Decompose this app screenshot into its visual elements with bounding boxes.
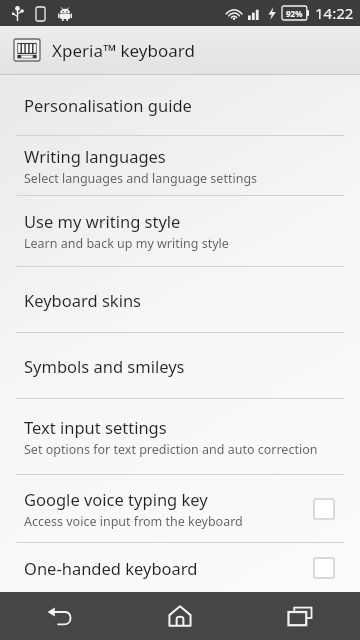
button[interactable]: Google voice typing key [0,475,360,542]
staticText: Google voice typing key [24,488,208,510]
staticText: Writing languages [24,145,166,167]
staticText: Learn and back up my writing style [24,235,229,252]
button[interactable]: Xperia™ keyboard [0,26,360,74]
button[interactable]: Personalisation guide [0,75,360,135]
staticText: Symbols and smileys [24,355,185,377]
staticText: One-handed keyboard [24,557,198,579]
staticText: Set options for text prediction and auto… [24,441,318,458]
staticText: Text input settings [24,416,167,438]
staticText: Use my writing style [24,210,181,232]
button[interactable]: Recent apps [240,592,360,640]
staticText: Keyboard skins [24,289,141,311]
button[interactable]: Use my writing style [0,196,360,266]
button[interactable]: One-handed keyboard [0,543,360,592]
button[interactable]: Back [0,592,120,640]
staticText: Personalisation guide [24,94,192,116]
button[interactable]: Text input settings [0,399,360,474]
button[interactable]: Keyboard skins [0,267,360,332]
staticText: Access voice input from the keyboard [24,513,243,530]
staticText: Select languages and language settings [24,170,258,187]
button[interactable]: Writing languages [0,136,360,195]
staticText: Xperia™ keyboard [52,39,195,62]
button[interactable]: Symbols and smileys [0,333,360,398]
button[interactable]: Toggle Google voice typing key [312,497,336,521]
button[interactable]: Toggle One-handed keyboard [312,556,336,580]
staticText: 14:22 [315,3,354,23]
staticText: 92% [286,8,303,19]
button[interactable]: Home [120,592,240,640]
